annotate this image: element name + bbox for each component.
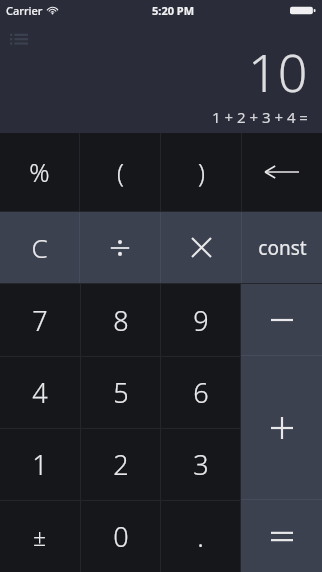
button[interactable]: History <box>6 26 32 52</box>
staticText: ) <box>198 155 205 189</box>
button[interactable]: Plus <box>241 356 322 499</box>
staticText: 8 <box>113 302 129 339</box>
button[interactable]: ( <box>80 133 160 211</box>
button[interactable]: . <box>161 501 240 572</box>
button[interactable]: C <box>0 212 79 283</box>
button[interactable]: 0 <box>81 501 160 572</box>
staticText: Carrier <box>6 3 43 18</box>
staticText: 3 <box>193 446 209 483</box>
button[interactable]: Plus minus <box>0 501 80 572</box>
staticText: ± <box>33 521 47 552</box>
staticText: const <box>258 235 307 261</box>
staticText: ( <box>117 155 124 189</box>
staticText: 4 <box>32 374 48 411</box>
staticText: 2 <box>113 446 129 483</box>
button[interactable]: 9 <box>161 284 240 356</box>
staticText: . <box>197 518 204 555</box>
staticText: 9 <box>193 302 209 339</box>
staticText: 10 <box>248 36 308 107</box>
button[interactable]: 1 <box>0 429 80 500</box>
button[interactable]: 4 <box>0 357 80 428</box>
staticText: 5 <box>113 374 129 411</box>
button[interactable]: % <box>0 133 79 211</box>
button[interactable]: 5 <box>81 357 160 428</box>
button[interactable]: Multiply <box>161 212 241 283</box>
staticText: 7 <box>32 302 48 339</box>
staticText: C <box>31 230 48 265</box>
button[interactable]: 3 <box>161 429 240 500</box>
staticText: 6 <box>193 374 209 411</box>
button[interactable]: ) <box>161 133 241 211</box>
staticText: % <box>29 155 50 189</box>
button[interactable]: Divide <box>80 212 160 283</box>
staticText: 5:20 PM <box>152 3 195 18</box>
button[interactable]: Equals <box>241 500 322 572</box>
button[interactable]: 6 <box>161 357 240 428</box>
button[interactable]: Backspace <box>242 133 322 211</box>
staticText: 1 + 2 + 3 + 4 = <box>212 107 308 127</box>
button[interactable]: 8 <box>81 284 160 356</box>
staticText: 1 <box>32 446 48 483</box>
button[interactable]: 7 <box>0 284 80 356</box>
button[interactable]: const <box>242 212 322 283</box>
button[interactable]: Minus <box>241 284 322 355</box>
button[interactable]: 2 <box>81 429 160 500</box>
staticText: 0 <box>113 518 129 555</box>
